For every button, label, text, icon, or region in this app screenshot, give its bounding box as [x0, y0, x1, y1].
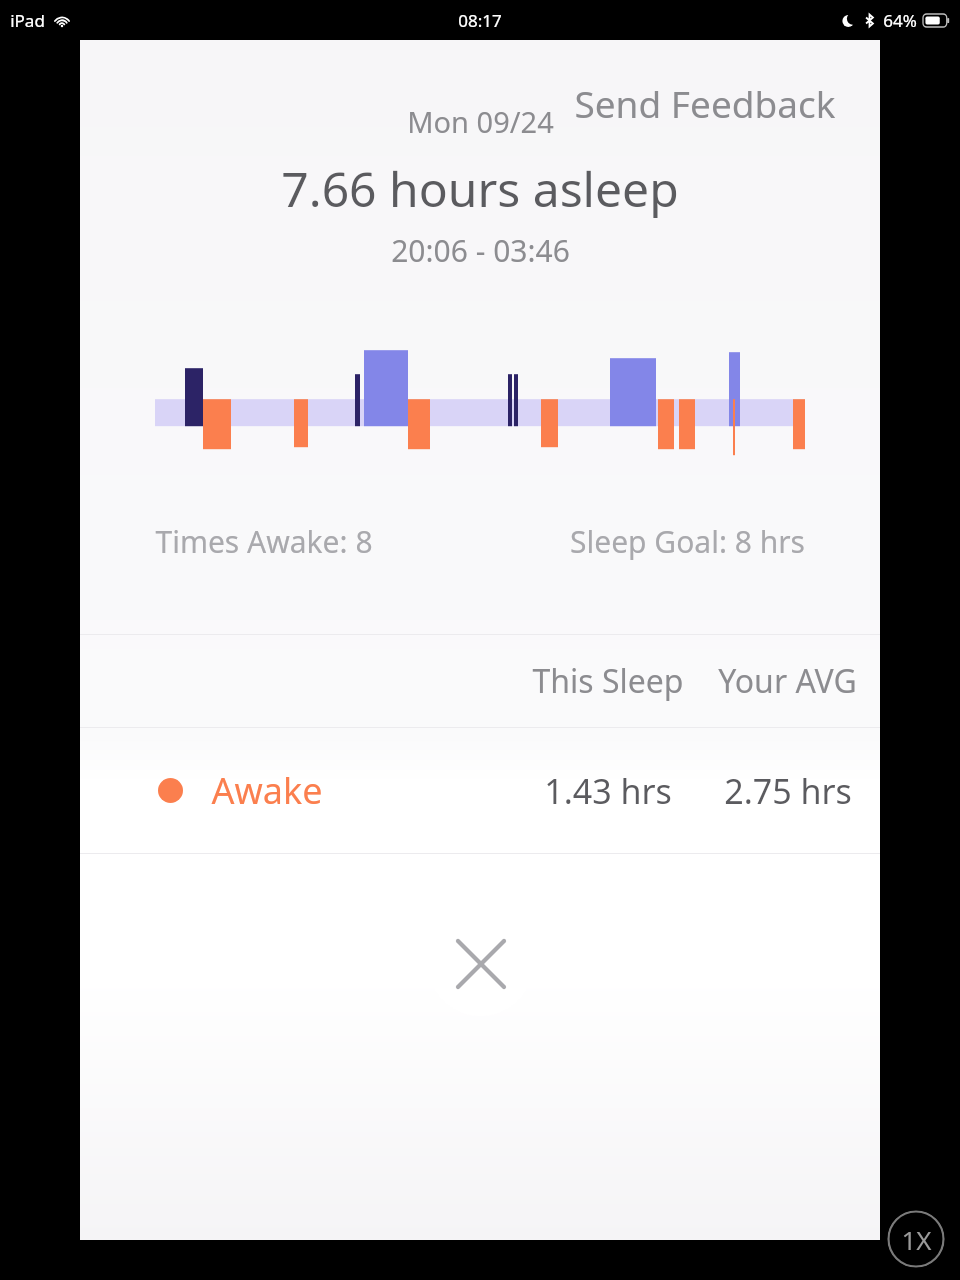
staticText: 08:17 — [458, 9, 502, 32]
button[interactable]: Close — [428, 911, 533, 1016]
staticText: iPad — [10, 9, 45, 32]
button[interactable]: Zoom 1X — [887, 1210, 945, 1268]
staticText: Your AVG — [718, 659, 857, 703]
staticText: Send Feedback — [574, 78, 836, 128]
staticText: Mon 09/24 — [407, 102, 554, 141]
button[interactable]: Send Feedback — [572, 76, 838, 130]
staticText: Times Awake: 8 — [155, 521, 373, 562]
staticText: 1.43 hrs — [544, 768, 672, 814]
button[interactable]: Awake — [80, 728, 880, 853]
staticText: Sleep Goal: 8 hrs — [570, 521, 805, 562]
staticText: 7.66 hours asleep — [281, 156, 679, 221]
staticText: This Sleep — [532, 659, 684, 703]
staticText: 20:06 - 03:46 — [391, 230, 570, 270]
staticText: Awake — [211, 766, 323, 815]
staticText: 2.75 hrs — [724, 768, 852, 814]
staticText: 64% — [883, 9, 917, 32]
staticText: 1X — [901, 1222, 932, 1257]
